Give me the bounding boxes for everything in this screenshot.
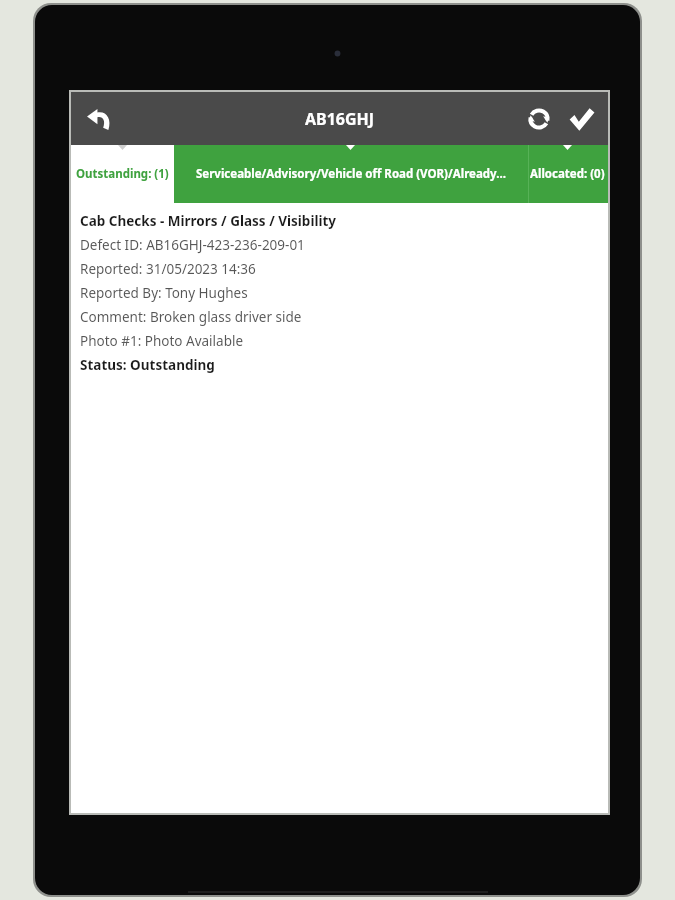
button[interactable]: Serviceable/Advisory/Vehicle off Road (V…: [174, 145, 527, 203]
staticText: Reported: 31/05/2023 14:36: [80, 260, 256, 278]
staticText: Serviceable/Advisory/Vehicle off Road (V…: [196, 166, 506, 182]
staticText: Outstanding: (1): [76, 166, 169, 182]
staticText: Status: Outstanding: [80, 356, 215, 374]
staticText: AB16GHJ: [305, 108, 375, 130]
button[interactable]: Refresh: [518, 98, 560, 140]
staticText: Allocated: (0): [530, 166, 605, 182]
button[interactable]: Outstanding: (1): [71, 145, 174, 203]
staticText: Reported By: Tony Hughes: [80, 284, 248, 302]
staticText: Defect ID: AB16GHJ-423-236-209-01: [80, 236, 305, 254]
button[interactable]: Back: [79, 99, 119, 139]
button[interactable]: Allocated: (0): [527, 145, 608, 203]
staticText: Photo #1: Photo Available: [80, 332, 244, 350]
staticText: Comment: Broken glass driver side: [80, 308, 302, 326]
staticText: Cab Checks - Mirrors / Glass / Visibilit…: [80, 212, 337, 230]
button[interactable]: Confirm: [560, 98, 602, 140]
